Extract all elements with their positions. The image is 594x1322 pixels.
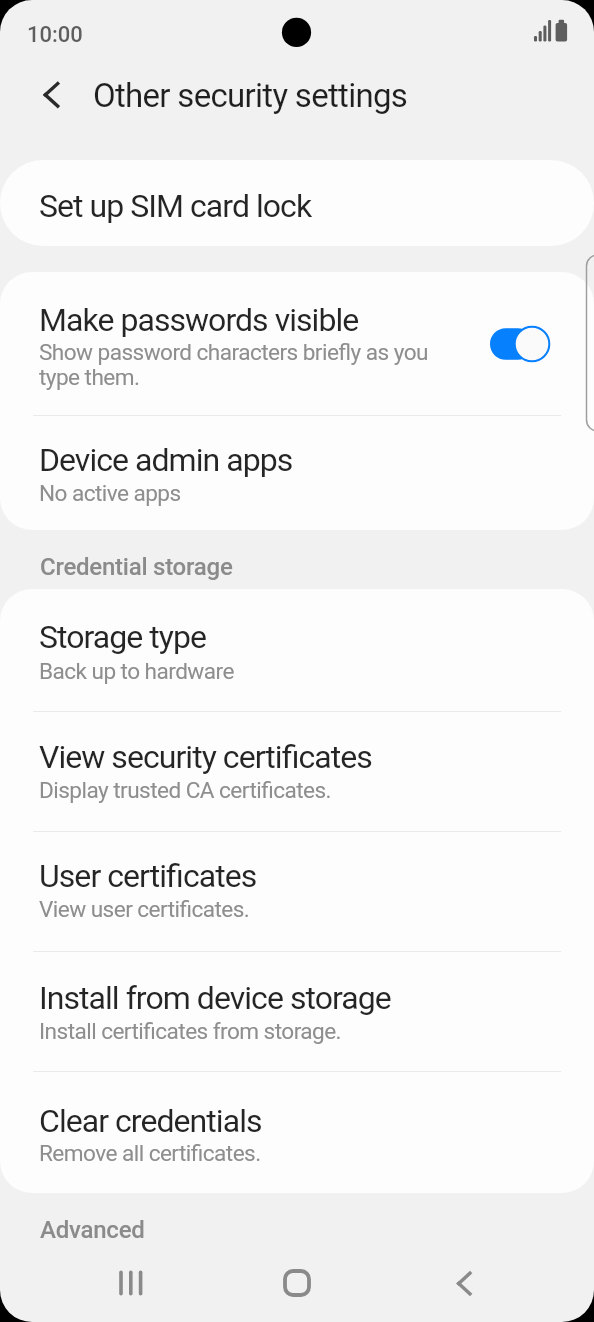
staticText: Install from device storage (39, 979, 391, 1017)
staticText: 10:00 (27, 22, 83, 48)
staticText: Credential storage (40, 553, 233, 581)
staticText: Remove all certificates. (39, 1140, 261, 1166)
button[interactable]: User certificates (0, 832, 594, 951)
staticText: Back up to hardware (39, 658, 234, 684)
button[interactable]: Make passwords visible (0, 272, 594, 415)
staticText: View security certificates (39, 738, 372, 776)
staticText: Set up SIM card lock (39, 187, 312, 225)
staticText: Show password characters briefly as you (39, 339, 428, 365)
staticText: Other security settings (93, 76, 408, 115)
button[interactable]: Device admin apps (0, 416, 594, 530)
staticText: Clear credentials (39, 1102, 262, 1140)
staticText: Display trusted CA certificates. (39, 777, 331, 803)
button[interactable]: Back (427, 1247, 499, 1319)
button[interactable]: Recent apps (95, 1247, 167, 1319)
staticText: Make passwords visible (39, 301, 359, 339)
button[interactable]: Set up SIM card lock (0, 160, 594, 246)
button[interactable]: Home (261, 1247, 333, 1319)
button[interactable]: View security certificates (0, 712, 594, 831)
staticText: View user certificates. (39, 896, 250, 922)
staticText: User certificates (39, 857, 257, 895)
button[interactable]: Clear credentials (0, 1072, 594, 1193)
staticText: No active apps (39, 480, 181, 506)
staticText: Device admin apps (39, 441, 293, 479)
staticText: type them. (39, 364, 140, 390)
staticText: Storage type (39, 618, 207, 656)
button[interactable]: Install from device storage (0, 952, 594, 1071)
button[interactable]: Navigate up (27, 71, 75, 119)
button[interactable]: Make passwords visible toggle (489, 318, 551, 370)
staticText: Advanced (40, 1216, 145, 1244)
button[interactable]: Storage type (0, 589, 594, 711)
staticText: Install certificates from storage. (39, 1018, 342, 1044)
